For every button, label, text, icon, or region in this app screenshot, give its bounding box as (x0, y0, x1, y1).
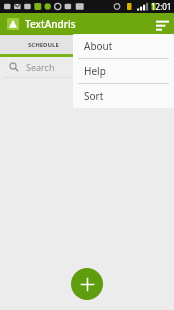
button[interactable]: Search (0, 57, 174, 77)
staticText: Help (84, 64, 106, 78)
button[interactable]: Add (71, 268, 103, 300)
staticText: Sort (84, 89, 104, 103)
staticText: Search (26, 61, 55, 73)
staticText: About (84, 39, 113, 53)
staticText: TextAndris (25, 17, 76, 31)
button[interactable]: SCHEDULE (0, 35, 87, 54)
button[interactable]: Help (73, 59, 174, 83)
staticText: 12:01 (151, 1, 172, 12)
button[interactable]: About (73, 34, 174, 58)
staticText: SCHEDULE (28, 41, 59, 49)
button[interactable]: Sort (73, 84, 174, 108)
button[interactable]: More options (150, 13, 174, 35)
